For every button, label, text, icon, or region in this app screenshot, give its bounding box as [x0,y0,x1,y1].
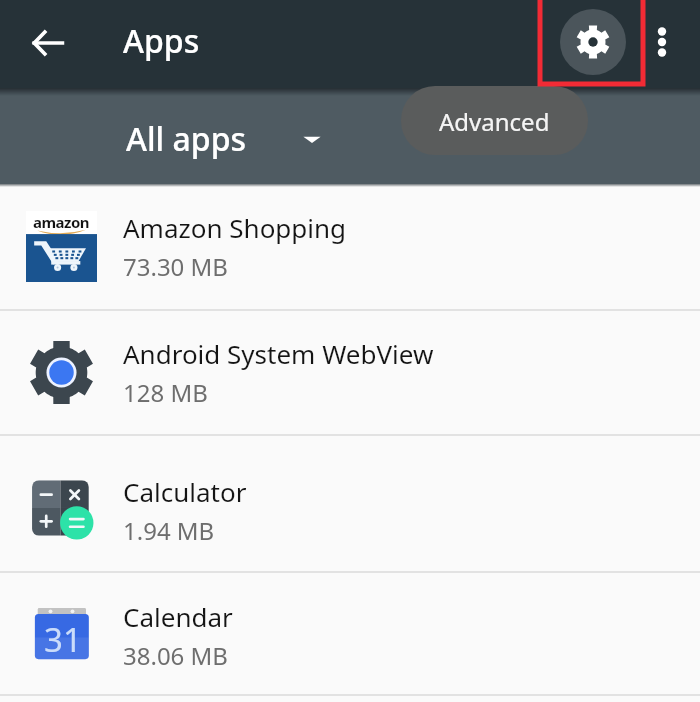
staticText: Calendar [123,599,233,634]
button[interactable]: Back [22,17,74,69]
staticText: Android System WebView [123,336,434,371]
staticText: 73.30 MB [123,250,228,283]
button[interactable]: Settings [560,9,626,75]
staticText: 38.06 MB [123,639,228,672]
staticText: All apps [126,117,247,161]
button[interactable]: amazon [0,184,700,309]
button[interactable]: 31 [0,573,700,694]
button[interactable]: Android System WebView [0,311,700,434]
staticText: 1.94 MB [123,514,215,547]
staticText: 31 [44,617,82,662]
staticText: amazon [33,212,90,232]
button[interactable]: Calculator [0,436,700,571]
staticText: 128 MB [123,376,208,409]
button[interactable]: More options [638,18,686,66]
button[interactable]: All apps [126,115,321,163]
staticText: Apps [123,19,200,63]
staticText: Advanced [439,105,550,138]
staticText: Amazon Shopping [123,210,347,245]
staticText: Calculator [123,474,247,509]
